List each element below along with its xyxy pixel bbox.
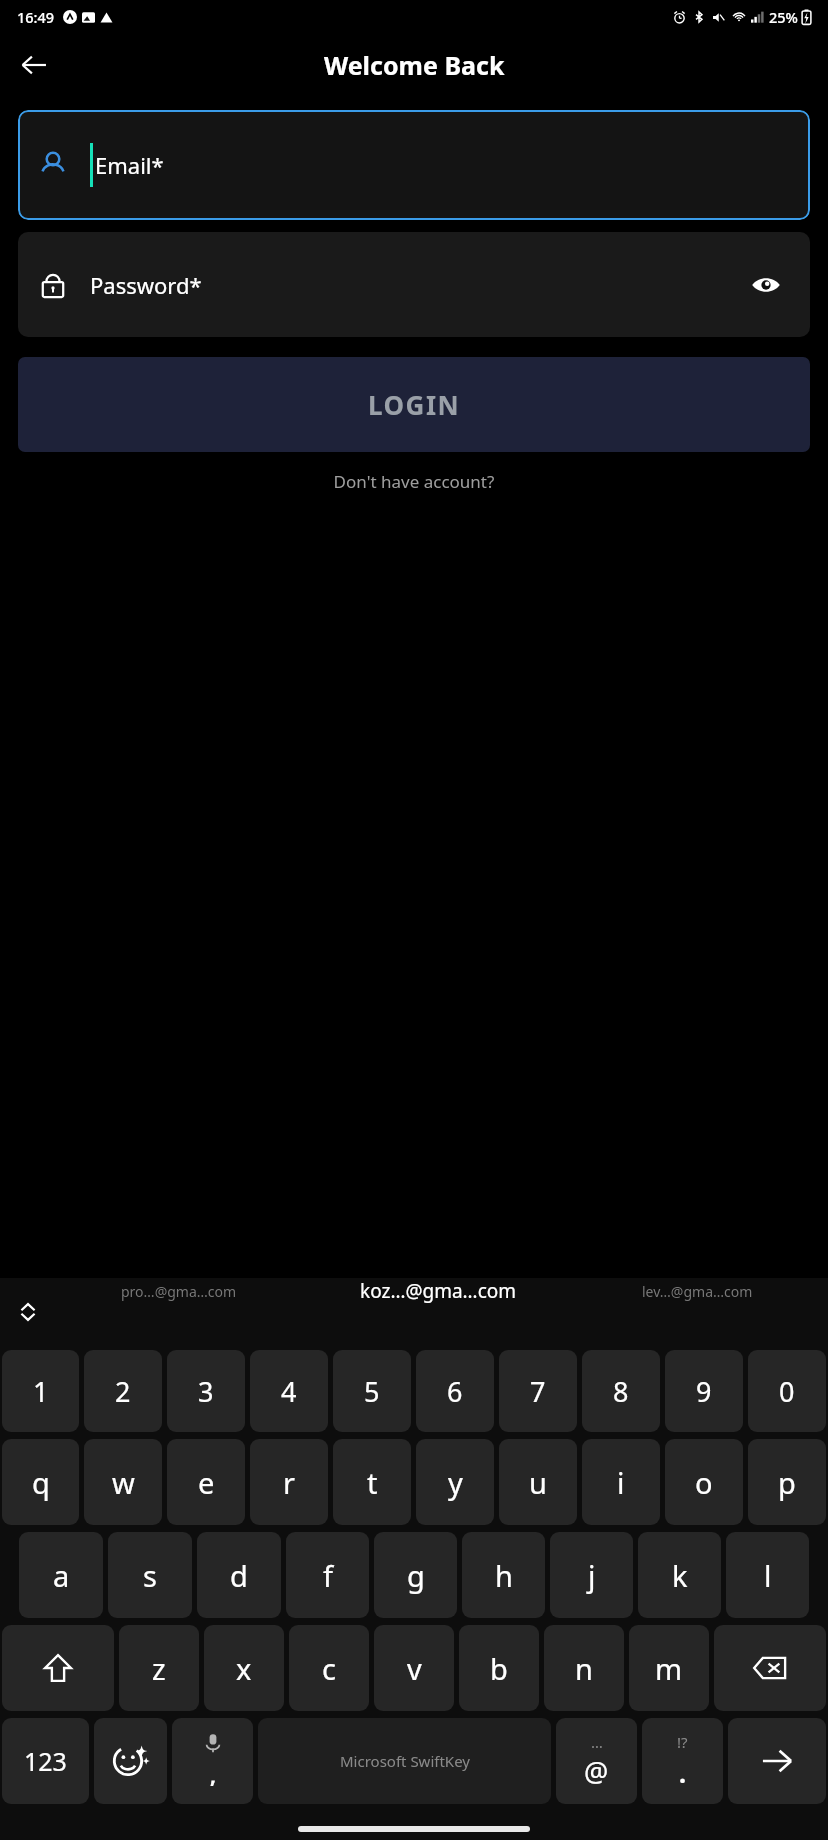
button[interactable]: !? (642, 1718, 723, 1804)
staticText: g (407, 1556, 425, 1595)
staticText: koz…@gma…com (360, 1278, 517, 1304)
staticText: x (236, 1649, 252, 1688)
staticText: 8 (613, 1373, 629, 1410)
button[interactable]: a (19, 1532, 103, 1618)
button[interactable]: s (108, 1532, 192, 1618)
button[interactable]: r (250, 1439, 328, 1525)
staticText: !? (677, 1732, 688, 1752)
button[interactable]: Password* (18, 232, 810, 337)
button[interactable]: t (333, 1439, 411, 1525)
staticText: Email* (95, 150, 164, 180)
staticText: 2 (115, 1373, 131, 1410)
button[interactable]: Email* (18, 110, 810, 220)
staticText: 16:49 (17, 7, 55, 27)
button[interactable]: f (286, 1532, 369, 1618)
button[interactable]: Show password (744, 263, 788, 307)
button[interactable]: Enter (728, 1718, 826, 1804)
staticText: @ (584, 1753, 609, 1790)
button[interactable]: Backspace (714, 1625, 826, 1711)
button[interactable]: 8 (582, 1350, 660, 1432)
staticText: e (198, 1463, 215, 1502)
button[interactable]: LOGIN (18, 357, 810, 452)
button[interactable]: … (556, 1718, 637, 1804)
staticText: 3 (198, 1373, 214, 1410)
staticText: Welcome Back (324, 48, 505, 82)
button[interactable]: Shift (2, 1625, 114, 1711)
button[interactable]: q (2, 1439, 79, 1525)
button[interactable]: 6 (416, 1350, 494, 1432)
staticText: 0 (779, 1373, 795, 1410)
button[interactable]: 5 (333, 1350, 411, 1432)
button[interactable]: Don't have account? (0, 468, 828, 495)
staticText: 5 (364, 1373, 380, 1410)
button[interactable]: 1 (2, 1350, 79, 1432)
button[interactable]: i (582, 1439, 660, 1525)
staticText: Password* (90, 270, 202, 300)
button[interactable]: j (550, 1532, 633, 1618)
staticText: b (490, 1649, 508, 1688)
staticText: … (591, 1732, 603, 1752)
staticText: k (672, 1556, 688, 1595)
staticText: m (655, 1649, 683, 1688)
button[interactable]: Voice input and comma (172, 1718, 253, 1804)
staticText: 7 (530, 1373, 546, 1410)
button[interactable]: 7 (499, 1350, 577, 1432)
button[interactable]: w (84, 1439, 162, 1525)
button[interactable]: k (638, 1532, 721, 1618)
button[interactable]: l (726, 1532, 809, 1618)
button[interactable]: p (748, 1439, 826, 1525)
button[interactable]: koz…@gma…com (300, 1278, 577, 1304)
button[interactable]: Expand suggestions (6, 1290, 50, 1334)
button[interactable]: 9 (665, 1350, 743, 1432)
button[interactable]: pro…@gma…com (58, 1282, 300, 1301)
button[interactable]: Back (8, 39, 60, 91)
staticText: q (32, 1463, 50, 1502)
button[interactable]: v (374, 1625, 454, 1711)
staticText: LOGIN (368, 387, 461, 422)
staticText: 6 (447, 1373, 463, 1410)
button[interactable]: u (499, 1439, 577, 1525)
staticText: i (617, 1463, 625, 1502)
staticText: j (588, 1556, 596, 1595)
button[interactable]: h (462, 1532, 545, 1618)
button[interactable]: o (665, 1439, 743, 1525)
button[interactable]: 123 (2, 1718, 89, 1804)
button[interactable]: 3 (167, 1350, 245, 1432)
staticText: 123 (24, 1744, 67, 1778)
staticText: c (322, 1649, 336, 1688)
staticText: z (152, 1649, 166, 1688)
staticText: a (53, 1556, 70, 1595)
button[interactable]: b (459, 1625, 539, 1711)
staticText: r (283, 1463, 295, 1502)
button[interactable]: m (629, 1625, 709, 1711)
staticText: 4 (281, 1373, 297, 1410)
staticText: t (367, 1463, 378, 1502)
staticText: v (407, 1649, 422, 1688)
staticText: y (448, 1463, 463, 1502)
button[interactable]: e (167, 1439, 245, 1525)
staticText: , (210, 1761, 216, 1790)
button[interactable]: Space (258, 1718, 551, 1804)
button[interactable]: 2 (84, 1350, 162, 1432)
button[interactable]: 4 (250, 1350, 328, 1432)
staticText: u (529, 1463, 547, 1502)
staticText: 9 (696, 1373, 712, 1410)
staticText: lev…@gma…com (642, 1282, 753, 1301)
staticText: pro…@gma…com (121, 1282, 237, 1301)
button[interactable]: c (289, 1625, 369, 1711)
button[interactable]: z (119, 1625, 199, 1711)
staticText: n (575, 1649, 593, 1688)
staticText: w (112, 1463, 135, 1502)
button[interactable]: x (204, 1625, 284, 1711)
button[interactable]: Emoji (94, 1718, 167, 1804)
button[interactable]: lev…@gma…com (577, 1282, 818, 1301)
staticText: 25% (769, 7, 798, 27)
button[interactable]: n (544, 1625, 624, 1711)
button[interactable]: 0 (748, 1350, 826, 1432)
button[interactable]: y (416, 1439, 494, 1525)
staticText: f (323, 1556, 333, 1595)
button[interactable]: d (197, 1532, 281, 1618)
staticText: s (143, 1556, 157, 1595)
button[interactable]: g (374, 1532, 457, 1618)
staticText: d (230, 1556, 248, 1595)
